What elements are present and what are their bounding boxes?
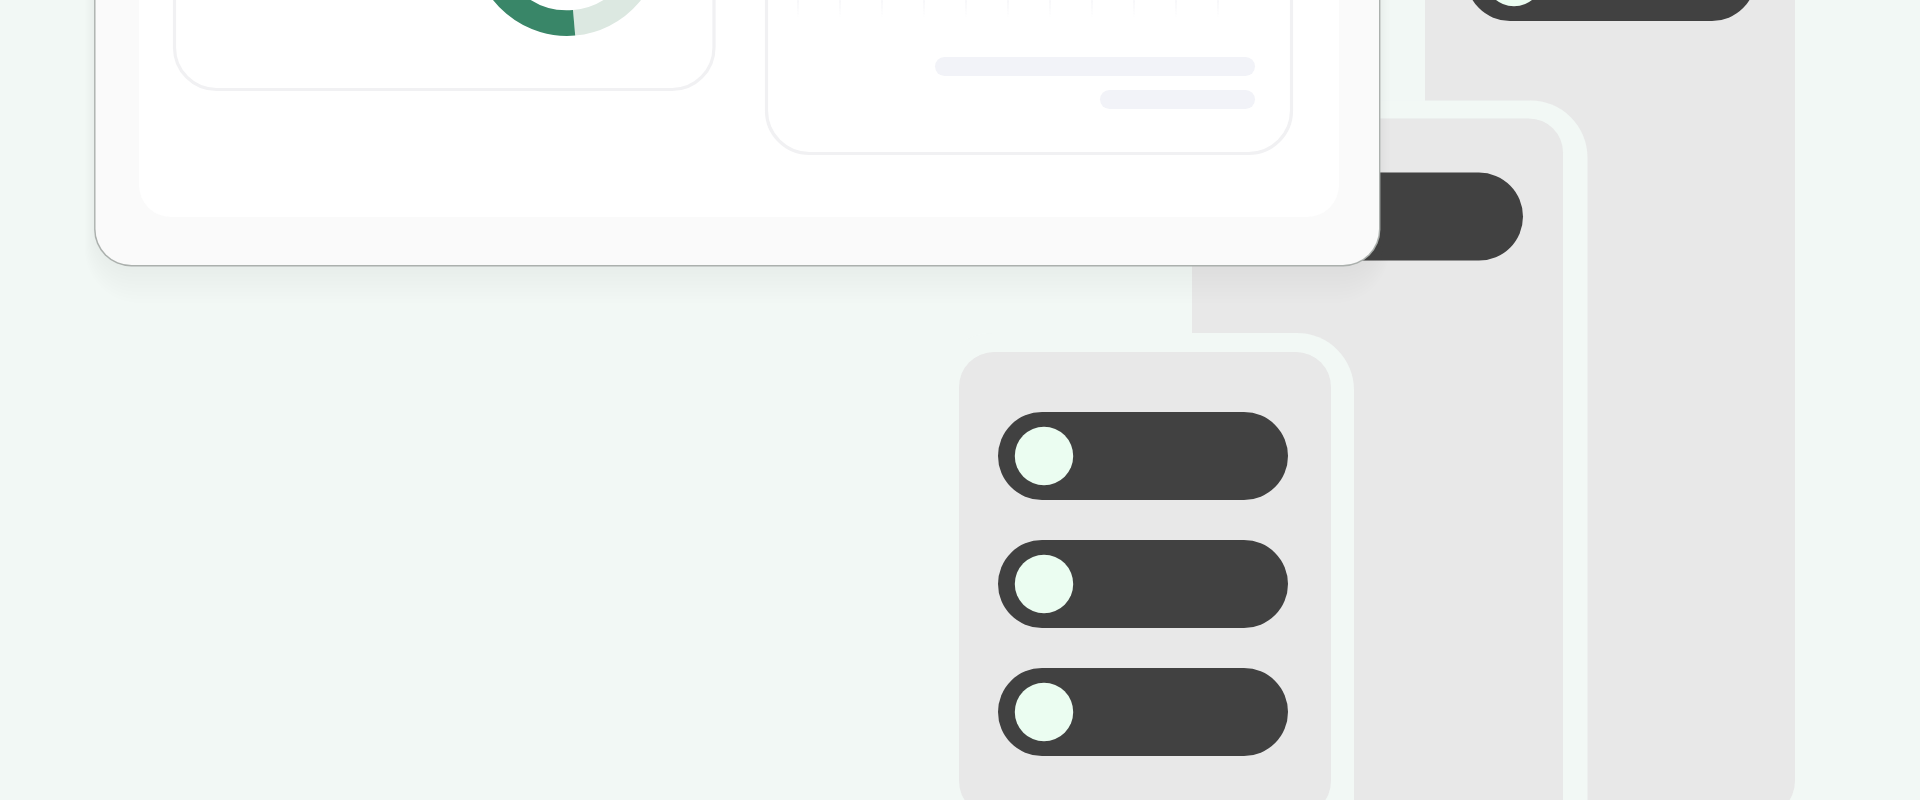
button[interactable]: Toggle setting 3 <box>998 668 1288 756</box>
button[interactable]: Usage donut chart <box>174 0 715 90</box>
button[interactable]: Toggle setting 4 <box>1233 173 1523 261</box>
button[interactable]: Activity chart <box>766 0 1292 154</box>
button[interactable]: Toggle setting 1 <box>998 412 1288 500</box>
button[interactable]: Toggle setting 5 <box>1466 0 1756 21</box>
button[interactable]: Toggle setting 2 <box>998 540 1288 628</box>
